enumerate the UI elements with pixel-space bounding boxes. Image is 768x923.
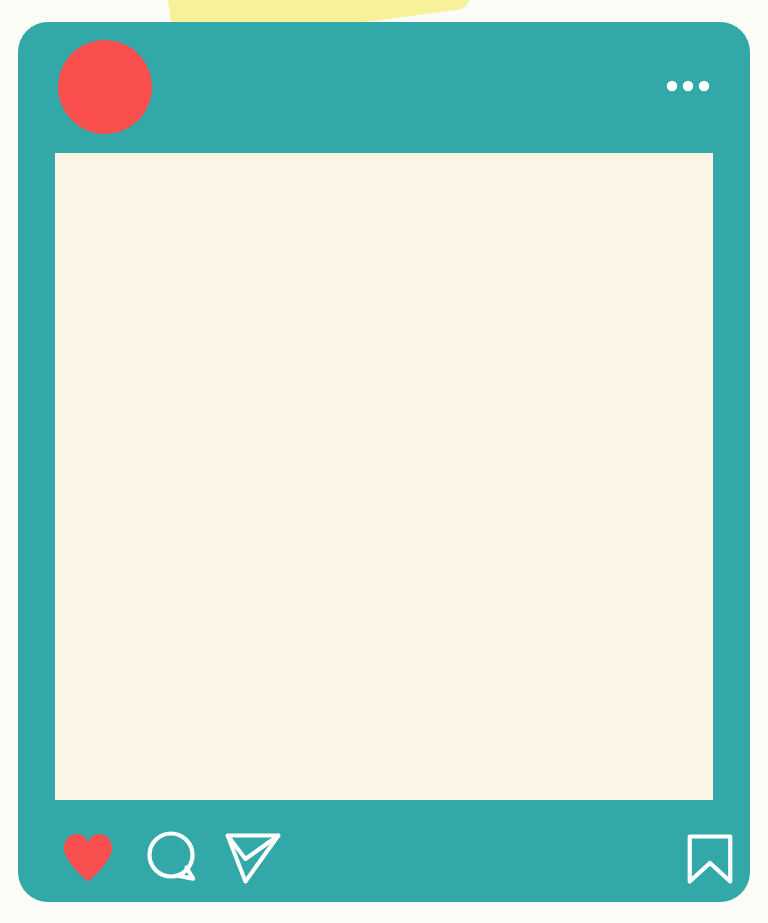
button[interactable]: Save [674,822,746,894]
button[interactable]: Like [52,822,124,894]
button[interactable]: More options [640,38,736,134]
button[interactable]: Profile avatar [58,40,152,134]
button[interactable]: Share [217,822,289,894]
button[interactable]: Comment [137,822,209,894]
